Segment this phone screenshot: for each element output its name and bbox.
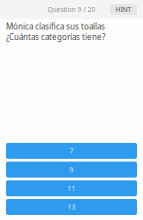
button[interactable]: 11 bbox=[6, 180, 137, 196]
button[interactable]: 13 bbox=[6, 199, 137, 215]
button[interactable]: HINT bbox=[110, 4, 137, 15]
staticText: 7 bbox=[69, 146, 73, 155]
staticText: Mónica clasifica sus toallas ¿Cuántas ca… bbox=[6, 21, 105, 42]
staticText: 11 bbox=[67, 184, 75, 193]
staticText: 9 bbox=[69, 165, 73, 174]
button[interactable]: 7 bbox=[6, 143, 137, 159]
staticText: Question 9 / 20 bbox=[47, 5, 95, 14]
button[interactable]: 9 bbox=[6, 162, 137, 178]
staticText: 13 bbox=[67, 203, 75, 211]
staticText: HINT bbox=[115, 5, 131, 14]
